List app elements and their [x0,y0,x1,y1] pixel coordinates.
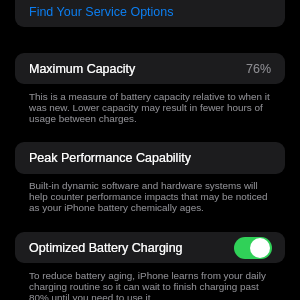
button[interactable]: Optimized Battery Charging [15,232,285,263]
staticText: Find Your Service Options [29,5,174,19]
staticText: To reduce battery aging, iPhone learns f… [29,270,274,300]
staticText: Built-in dynamic software and hardware s… [29,180,274,213]
staticText: Optimized Battery Charging [29,241,183,255]
button[interactable]: Maximum Capacity [15,53,285,84]
staticText: Peak Performance Capability [29,151,191,165]
button[interactable]: Find Your Service Options [15,0,285,27]
button[interactable]: Peak Performance Capability [15,142,285,174]
staticText: Maximum Capacity [29,62,136,76]
staticText: 76% [246,62,272,76]
staticText: This is a measure of battery capacity re… [29,91,274,124]
button[interactable]: Optimized Battery Charging [234,237,272,259]
